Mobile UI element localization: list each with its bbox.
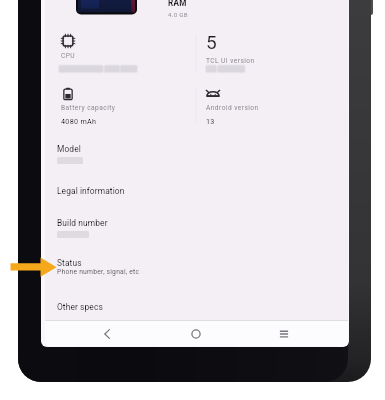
staticText: Battery capacity	[61, 104, 116, 112]
staticText: Build number	[57, 218, 108, 228]
staticText: Other specs	[57, 302, 103, 312]
staticText: 5	[206, 31, 217, 53]
button[interactable]: Other specs	[45, 302, 348, 312]
staticText: Phone number, signal, etc	[57, 268, 140, 276]
button[interactable]: Home	[179, 321, 213, 346]
button[interactable]: Model	[45, 144, 348, 164]
staticText: TCL UI version	[206, 57, 255, 65]
button[interactable]: Legal information	[45, 186, 348, 196]
button[interactable]: Back	[90, 321, 124, 346]
button[interactable]: Status	[45, 258, 348, 276]
button[interactable]: Build number	[45, 218, 348, 238]
button[interactable]: Recent apps	[267, 321, 301, 346]
button[interactable]: CPU	[61, 34, 76, 60]
staticText: CPU	[61, 52, 76, 60]
button[interactable]: Android version	[206, 86, 259, 125]
staticText: Legal information	[57, 186, 125, 196]
staticText: Model	[57, 144, 81, 154]
staticText: 4.0 GB	[168, 11, 188, 18]
staticText: 13	[206, 117, 215, 125]
button[interactable]: TCL UI version	[206, 31, 255, 65]
staticText: Android version	[206, 104, 259, 112]
button[interactable]: Battery capacity	[61, 86, 116, 125]
staticText: RAM	[168, 0, 187, 8]
staticText: 4080 mAh	[61, 117, 97, 125]
staticText: Status	[57, 258, 82, 268]
